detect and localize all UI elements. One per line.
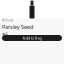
button[interactable]: Add to Bag <box>2 35 62 41</box>
staticText: Aesop <box>2 17 13 22</box>
staticText: Parsley Seed <box>2 23 33 31</box>
staticText: $65 <box>2 31 8 37</box>
staticText: Add to Bag <box>22 35 41 41</box>
